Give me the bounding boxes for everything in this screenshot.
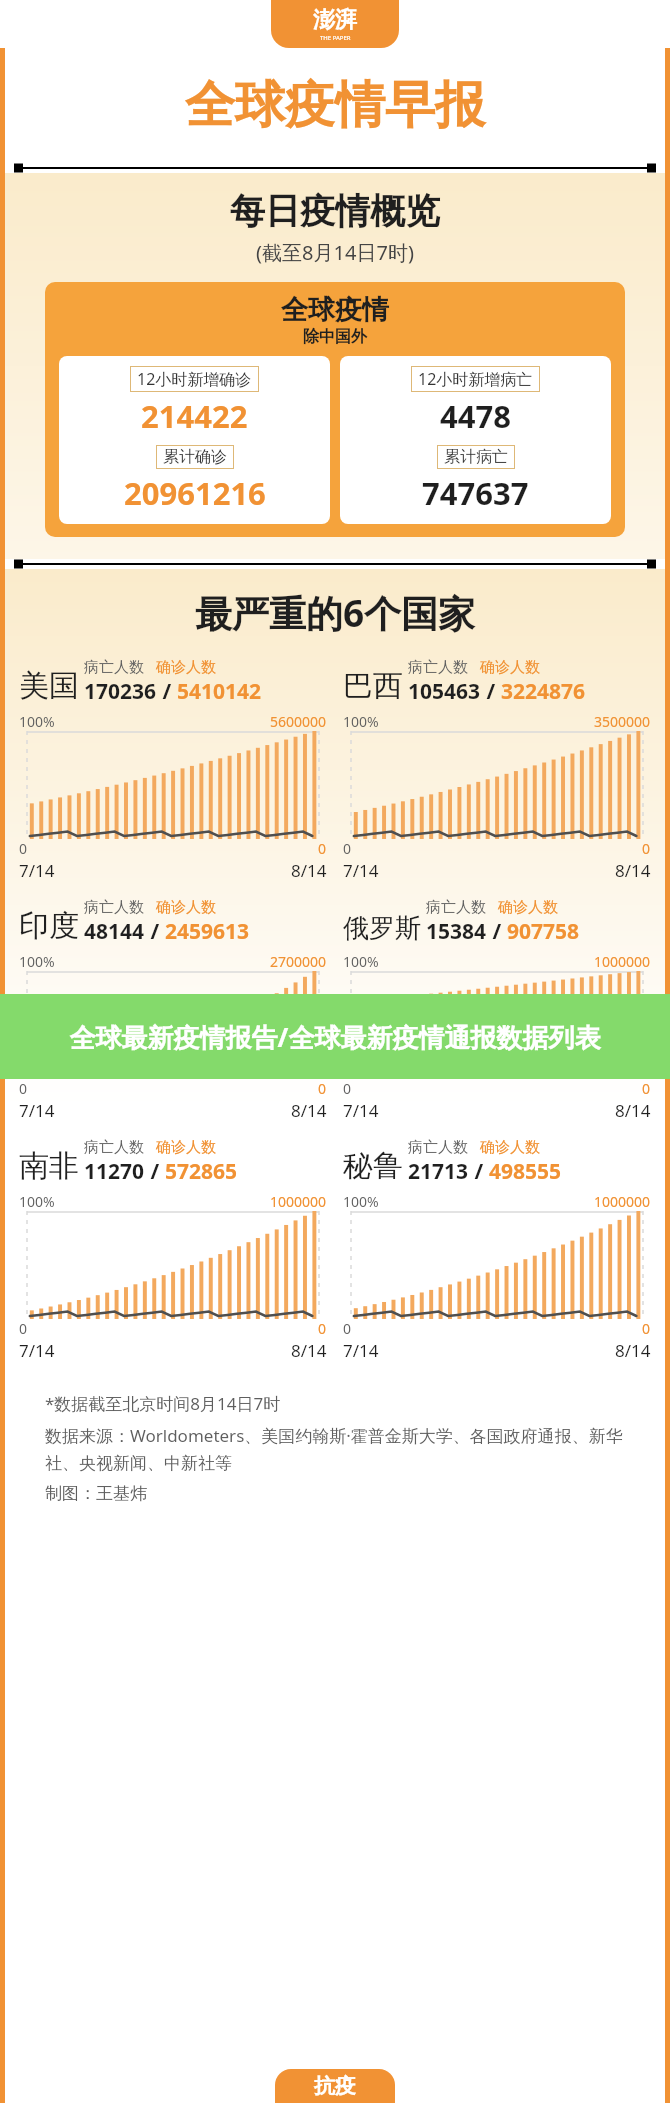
staticText: 累计确诊	[163, 447, 227, 467]
staticText: 8/14	[291, 1339, 327, 1362]
button[interactable]: The Paper logo	[271, 0, 399, 48]
staticText: 20961216	[124, 472, 266, 514]
staticText: 确诊人数	[156, 1138, 216, 1157]
staticText: 0	[19, 1079, 28, 1098]
staticText: 907758	[507, 917, 580, 946]
staticText: 747637	[422, 472, 529, 514]
staticText: 3500000	[594, 712, 651, 731]
staticText: 8/14	[291, 859, 327, 882]
staticText: 美国	[19, 667, 79, 705]
staticText: 7/14	[19, 859, 55, 882]
button[interactable]: 印度	[19, 898, 327, 1122]
staticText: 7/14	[19, 1339, 55, 1362]
staticText: 抗疫	[314, 2073, 356, 2099]
staticText: 印度	[19, 907, 79, 945]
staticText: 病亡人数	[408, 1138, 468, 1157]
staticText: /	[145, 917, 165, 946]
staticText: 48144	[84, 917, 145, 946]
staticText: 12小时新增病亡	[418, 368, 533, 390]
staticText: 2700000	[270, 952, 327, 971]
staticText: 12小时新增确诊	[137, 368, 252, 390]
staticText: 7/14	[343, 1339, 379, 1362]
staticText: 澎湃	[313, 6, 357, 34]
staticText: 0	[642, 1319, 651, 1338]
staticText: /	[145, 1157, 165, 1186]
staticText: /	[487, 917, 507, 946]
staticText: 累计病亡	[444, 447, 508, 467]
staticText: 7/14	[19, 1099, 55, 1122]
staticText: 1000000	[594, 1192, 651, 1211]
staticText: 最严重的6个国家	[5, 587, 665, 638]
staticText: 0	[318, 1319, 327, 1338]
staticText: 确诊人数	[156, 898, 216, 917]
staticText: 8/14	[615, 1339, 651, 1362]
staticText: 5600000	[270, 712, 327, 731]
staticText: 0	[318, 1079, 327, 1098]
button[interactable]: 巴西	[343, 658, 651, 882]
staticText: 3224876	[501, 677, 586, 706]
staticText: 105463	[408, 677, 481, 706]
staticText: 病亡人数	[84, 658, 144, 677]
staticText: 全球疫情早报	[185, 74, 485, 137]
staticText: 498555	[489, 1157, 562, 1186]
staticText: 4478	[440, 395, 511, 437]
staticText: 巴西	[343, 667, 403, 705]
staticText: /	[469, 1157, 489, 1186]
staticText: THE PAPER	[320, 34, 351, 42]
staticText: 7/14	[343, 859, 379, 882]
staticText: 秘鲁	[343, 1147, 403, 1185]
staticText: 确诊人数	[498, 898, 558, 917]
staticText: 100%	[343, 952, 379, 971]
staticText: /	[157, 677, 177, 706]
staticText: (截至8月14日7时)	[5, 239, 665, 266]
staticText: 100%	[19, 952, 55, 971]
staticText: 数据来源：Worldometers、美国约翰斯·霍普金斯大学、各国政府通报、新华…	[45, 1424, 625, 1474]
staticText: 病亡人数	[84, 898, 144, 917]
staticText: 214422	[141, 395, 248, 437]
staticText: 21713	[408, 1157, 469, 1186]
staticText: 15384	[426, 917, 487, 946]
staticText: 572865	[165, 1157, 238, 1186]
staticText: 0	[19, 1319, 28, 1338]
button[interactable]: 秘鲁	[343, 1138, 651, 1362]
button[interactable]: 12小时新增确诊	[59, 356, 330, 524]
staticText: /	[481, 677, 501, 706]
staticText: 0	[343, 839, 352, 858]
staticText: 0	[642, 1079, 651, 1098]
button[interactable]: 抗疫	[275, 2069, 395, 2103]
staticText: 确诊人数	[156, 658, 216, 677]
staticText: 0	[19, 839, 28, 858]
staticText: 病亡人数	[408, 658, 468, 677]
staticText: 俄罗斯	[343, 912, 421, 945]
staticText: 8/14	[291, 1099, 327, 1122]
staticText: 全球疫情	[59, 293, 611, 327]
staticText: *数据截至北京时间8月14日7时	[45, 1392, 281, 1415]
button[interactable]: 美国	[19, 658, 327, 882]
staticText: 100%	[19, 712, 55, 731]
staticText: 100%	[19, 1192, 55, 1211]
staticText: 1000000	[594, 952, 651, 971]
staticText: 病亡人数	[426, 898, 486, 917]
staticText: 1000000	[270, 1192, 327, 1211]
staticText: 8/14	[615, 859, 651, 882]
staticText: 每日疫情概览	[5, 189, 665, 233]
staticText: 100%	[343, 1192, 379, 1211]
button[interactable]: 俄罗斯	[343, 898, 651, 1122]
staticText: 除中国外	[59, 327, 611, 347]
button[interactable]: 12小时新增病亡	[340, 356, 611, 524]
staticText: 170236	[84, 677, 157, 706]
staticText: 100%	[343, 712, 379, 731]
staticText: 全球最新疫情报告/全球最新疫情通报数据列表	[16, 1019, 654, 1055]
staticText: 11270	[84, 1157, 145, 1186]
staticText: 南非	[19, 1147, 79, 1185]
staticText: 2459613	[165, 917, 250, 946]
staticText: 确诊人数	[480, 658, 540, 677]
staticText: 0	[343, 1079, 352, 1098]
button[interactable]: 南非	[19, 1138, 327, 1362]
staticText: 0	[642, 839, 651, 858]
staticText: 0	[343, 1319, 352, 1338]
staticText: 0	[318, 839, 327, 858]
staticText: 8/14	[615, 1099, 651, 1122]
staticText: 制图：王基炜	[45, 1483, 147, 1504]
staticText: 确诊人数	[480, 1138, 540, 1157]
